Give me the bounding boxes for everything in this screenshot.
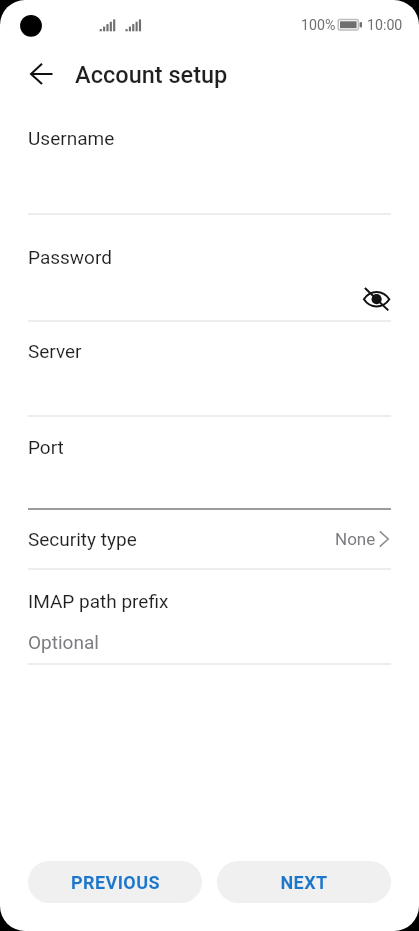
button[interactable]: Navigate up	[20, 52, 64, 96]
staticText: None	[335, 529, 376, 549]
staticText: NEXT	[280, 872, 328, 893]
staticText: Server	[28, 340, 82, 362]
button[interactable]: NEXT	[217, 861, 391, 903]
staticText: PREVIOUS	[71, 872, 160, 893]
staticText: Username	[28, 127, 115, 149]
staticText: 10:00	[367, 17, 403, 34]
button[interactable]: PREVIOUS	[28, 861, 202, 903]
staticText: Password	[28, 246, 112, 268]
button[interactable]: Security type	[0, 516, 419, 568]
button[interactable]: Show password	[359, 282, 395, 318]
staticText: Optional	[28, 631, 99, 653]
staticText: Account setup	[75, 61, 228, 89]
staticText: 100%	[301, 17, 336, 34]
staticText: Port	[28, 436, 64, 458]
staticText: Security type	[28, 528, 137, 550]
staticText: IMAP path prefix	[28, 590, 169, 612]
